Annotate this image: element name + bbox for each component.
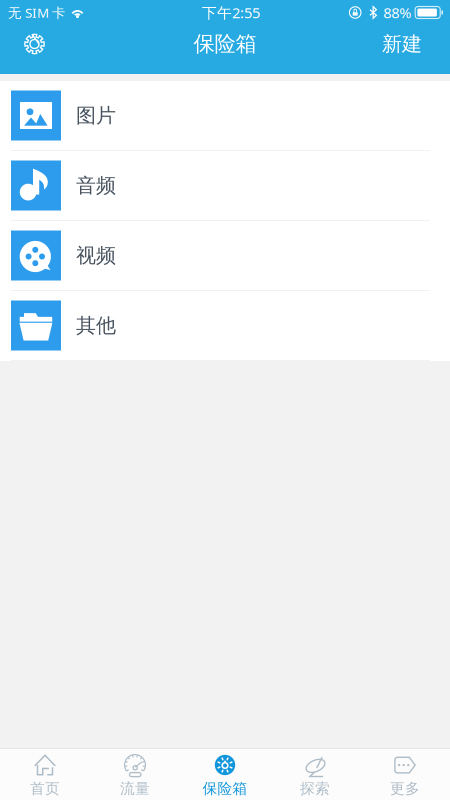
button[interactable]: 探索 bbox=[270, 745, 360, 800]
staticText: 88% bbox=[383, 3, 411, 22]
staticText: 下午2:55 bbox=[202, 3, 260, 22]
staticText: 探索 bbox=[300, 779, 330, 797]
button[interactable]: Settings bbox=[0, 25, 61, 63]
staticText: 其他 bbox=[76, 313, 116, 338]
staticText: 音频 bbox=[76, 173, 116, 198]
button[interactable]: 其他 bbox=[0, 291, 450, 361]
staticText: 保险箱 bbox=[202, 779, 247, 797]
button[interactable]: 视频 bbox=[0, 221, 450, 291]
staticText: 更多 bbox=[390, 779, 420, 797]
button[interactable]: 更多 bbox=[360, 745, 450, 800]
staticText: 图片 bbox=[76, 103, 116, 128]
staticText: 视频 bbox=[76, 243, 116, 268]
button[interactable]: 保险箱 bbox=[180, 745, 270, 800]
button[interactable]: 图片 bbox=[0, 81, 450, 151]
button[interactable]: 新建 bbox=[366, 25, 450, 63]
staticText: 流量 bbox=[120, 779, 150, 797]
staticText: 保险箱 bbox=[193, 31, 256, 57]
button[interactable]: 首页 bbox=[0, 745, 90, 800]
button[interactable]: 音频 bbox=[0, 151, 450, 221]
staticText: 无 SIM 卡 bbox=[8, 4, 65, 21]
staticText: 首页 bbox=[30, 779, 60, 797]
staticText: 新建 bbox=[382, 32, 422, 56]
button[interactable]: 流量 bbox=[90, 745, 180, 800]
